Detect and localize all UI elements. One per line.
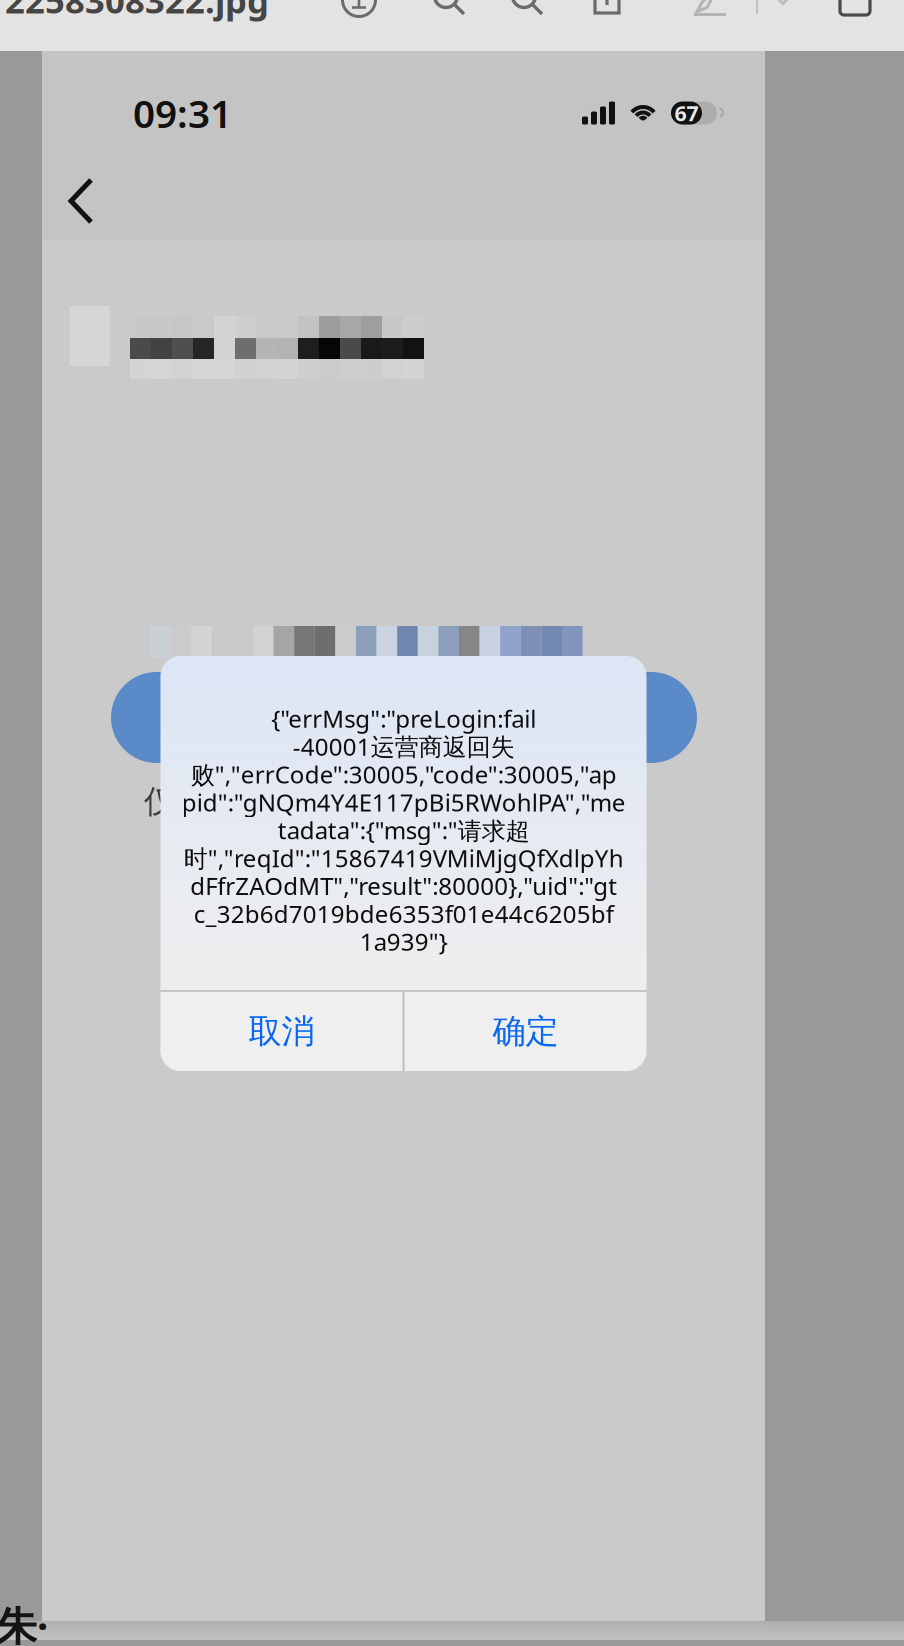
- staticText: 67: [674, 99, 698, 127]
- staticText: 09:31: [133, 87, 232, 139]
- staticText: 2258308322.jpg: [5, 0, 269, 23]
- staticText: 朱·: [0, 1599, 48, 1646]
- button[interactable]: Share: [590, 0, 624, 18]
- staticText: {"errMsg":"preLogin:fail -40001运营商返回失 败"…: [181, 702, 625, 957]
- staticText: 确定: [492, 1011, 558, 1052]
- button[interactable]: Back: [49, 162, 113, 240]
- button[interactable]: 确定: [404, 992, 646, 1071]
- button[interactable]: [111, 672, 697, 763]
- button[interactable]: Sidebar: [838, 0, 872, 18]
- staticText: 取消: [248, 1011, 314, 1052]
- button[interactable]: More: [772, 0, 794, 18]
- button[interactable]: Zoom in: [432, 0, 468, 18]
- button[interactable]: Markup: [692, 0, 728, 18]
- button[interactable]: Info: [341, 0, 377, 18]
- button[interactable]: 取消: [160, 992, 402, 1071]
- button[interactable]: Zoom out: [510, 0, 546, 18]
- staticText: 仅: [144, 782, 176, 821]
